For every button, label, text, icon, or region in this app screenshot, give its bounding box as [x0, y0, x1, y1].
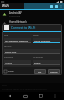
button[interactable]: Good strength: [33, 38, 60, 42]
button[interactable]: Home: [20, 92, 30, 100]
staticText: WPA2 PSK: [5, 50, 17, 53]
button[interactable]: More options: [60, 5, 62, 8]
staticText: SSID: [4, 34, 9, 37]
button[interactable]: WPA2 PSK: [4, 49, 60, 53]
staticText: IP settings: [33, 56, 43, 59]
staticText: ••••••••: [5, 61, 13, 64]
button[interactable]: Show: [4, 70, 15, 73]
button[interactable]: OK: [34, 69, 46, 74]
button[interactable]: Back: [5, 92, 15, 100]
staticText: Good strength: [34, 39, 51, 42]
staticText: Wi-Fi: [2, 4, 9, 8]
button[interactable]: Add network: [24, 3, 64, 9]
staticText: Secured with WPA2: [9, 24, 29, 27]
button[interactable]: Recent apps: [36, 92, 46, 100]
staticText: AndroidAP: [9, 11, 22, 15]
button[interactable]: My wireless network: [4, 38, 31, 42]
button[interactable]: GuestWiFi: [0, 28, 64, 37]
button[interactable]: Menu: [51, 92, 59, 100]
staticText: Security: [4, 45, 12, 48]
staticText: My wireless network: [5, 39, 28, 42]
button[interactable]: Wi-Fi: [0, 3, 24, 9]
staticText: Cancel: [50, 70, 58, 73]
button[interactable]: DHCP: [33, 60, 60, 64]
button[interactable]: Add network: [50, 5, 53, 8]
staticText: OK: [38, 70, 42, 73]
staticText: Connect to Wi-Fi: [11, 26, 36, 30]
staticText: Signal: [33, 34, 39, 37]
staticText: GuestWiFi: [9, 29, 22, 33]
button[interactable]: ••••••••: [4, 60, 31, 64]
staticText: Show: [8, 70, 14, 73]
staticText: Password: [4, 56, 14, 59]
button[interactable]: AndroidAP: [0, 10, 64, 19]
staticText: Wi-Fi: [2, 84, 8, 87]
button[interactable]: Cancel: [48, 69, 60, 74]
staticText: HomeNetwork: [9, 20, 27, 24]
staticText: DHCP: [34, 61, 41, 64]
staticText: Connected: [9, 15, 21, 18]
button[interactable]: Scan: [55, 5, 58, 8]
staticText: Connect to nearby Wi-Fi networks automat…: [2, 88, 47, 91]
button[interactable]: HomeNetwork: [0, 19, 64, 28]
